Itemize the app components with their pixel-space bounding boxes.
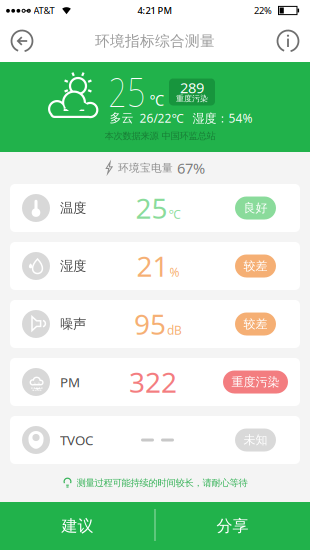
staticText: 良好 [243,201,267,215]
staticText: 21 [136,247,168,285]
staticText: 环境宝电量 [118,161,173,174]
staticText: TVOC [60,431,93,449]
staticText: 重度污染 [176,94,208,103]
staticText: PM [60,373,80,391]
staticText: 较差 [243,317,267,331]
staticText: 26/22℃ [139,110,183,126]
button[interactable]: 建议 [0,502,155,550]
staticText: 测量过程可能持续的时间较长，请耐心等待 [76,477,247,489]
button[interactable]: 噪声 [10,300,300,348]
staticText: 建议 [61,516,93,536]
button[interactable]: TVOC [10,416,300,464]
button[interactable]: Back [6,25,38,57]
staticText: 未知 [243,433,267,447]
staticText: ℃ [149,90,164,110]
button[interactable]: PM [10,358,300,406]
staticText: 多云 [109,111,133,125]
staticText: 较差 [243,259,267,273]
staticText: 重度污染 [231,375,279,389]
staticText: 湿度 [60,258,86,274]
staticText: 67% [177,158,205,178]
staticText: 289 [180,78,204,97]
staticText: 4:21 PM [137,4,172,17]
button[interactable]: 湿度 [10,242,300,290]
staticText: 25 [135,189,167,227]
staticText: AT&T [33,4,54,17]
staticText: 95 [134,305,166,343]
staticText: 22% [254,4,272,17]
staticText: 分享 [216,516,248,536]
staticText: 环境指标综合测量 [95,32,215,50]
button[interactable]: 温度 [10,184,300,232]
button[interactable]: 分享 [155,502,310,550]
staticText: 本次数据来源 中国环监总站 [104,130,215,142]
staticText: 322 [129,363,177,401]
staticText: 湿度：54% [192,110,252,126]
button[interactable]: Info [272,25,304,57]
staticText: ℃ [168,206,180,222]
staticText: 25 [103,64,151,118]
staticText: dB [167,322,182,338]
staticText: 噪声 [60,316,86,332]
staticText: 温度 [60,200,86,216]
staticText: % [169,264,179,280]
